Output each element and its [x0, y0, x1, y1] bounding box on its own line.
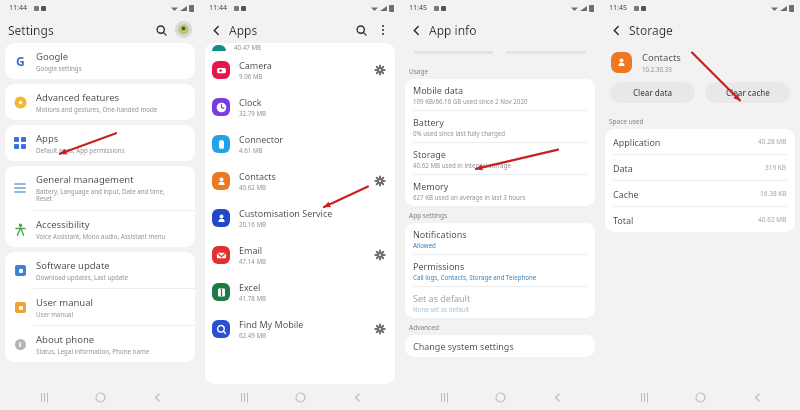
button[interactable]: Apps	[5, 125, 195, 161]
button[interactable]: G	[5, 43, 195, 79]
button[interactable]: Settings	[372, 321, 388, 337]
button[interactable]: Recents	[631, 384, 657, 410]
button[interactable]: Set as default	[405, 287, 595, 318]
staticText: Apps	[36, 132, 59, 145]
button[interactable]: General management	[5, 166, 195, 210]
staticText: Clock	[239, 96, 262, 108]
staticText: 41.78 MB	[239, 294, 267, 302]
staticText: App info	[429, 22, 477, 38]
staticText: Excel	[239, 281, 261, 293]
button[interactable]: Total	[605, 207, 795, 232]
button[interactable]: User manual	[5, 289, 195, 325]
button[interactable]: Application	[605, 129, 795, 154]
button[interactable]: Memory	[405, 175, 595, 206]
button[interactable]: Camera	[205, 51, 395, 88]
button[interactable]: Notifications	[405, 223, 595, 254]
staticText: App settings	[409, 211, 448, 220]
staticText: Clear cache	[726, 87, 770, 98]
button[interactable]: Home	[287, 384, 313, 410]
staticText: Google settings	[36, 64, 82, 72]
staticText: Total	[613, 214, 634, 226]
staticText: Storage	[629, 22, 673, 38]
button[interactable]: Home	[87, 384, 113, 410]
staticText: General management	[36, 173, 134, 186]
button[interactable]: Permissions	[405, 255, 595, 286]
button[interactable]: Software update	[5, 252, 195, 288]
staticText: Application	[613, 136, 661, 148]
staticText: Customisation Service	[239, 207, 333, 219]
staticText: Cache	[613, 188, 639, 200]
staticText: Clear data	[633, 87, 673, 98]
button[interactable]: Customisation Service	[205, 199, 395, 236]
button[interactable]: Back	[144, 384, 170, 410]
staticText: 47.14 MB	[239, 257, 267, 265]
button[interactable]: Recents	[431, 384, 457, 410]
button[interactable]: Data	[605, 155, 795, 180]
button[interactable]: Find My Mobile	[205, 310, 395, 347]
staticText: Google	[36, 50, 69, 63]
button[interactable]: Storage	[405, 143, 595, 174]
button[interactable]: Back	[744, 384, 770, 410]
button[interactable]: Settings	[372, 62, 388, 78]
button[interactable]: Email	[205, 236, 395, 273]
button[interactable]: Home	[487, 384, 513, 410]
button[interactable]: Connector	[205, 125, 395, 162]
button[interactable]: Cache	[605, 181, 795, 206]
staticText: Data	[613, 162, 633, 174]
button[interactable]: Home	[687, 384, 713, 410]
staticText: Allowed	[413, 241, 436, 249]
button[interactable]: More options	[374, 21, 392, 39]
button[interactable]: Search	[152, 21, 170, 39]
staticText: User manual	[36, 296, 93, 309]
staticText: 11:44	[209, 3, 227, 13]
button[interactable]: Back	[408, 22, 424, 38]
staticText: Storage	[413, 148, 446, 160]
staticText: User manual	[36, 310, 74, 318]
button[interactable]: Back	[344, 384, 370, 410]
staticText: 319 KB	[765, 163, 787, 172]
staticText: 62.49 MB	[239, 331, 267, 339]
staticText: 0% used since last fully charged	[413, 129, 506, 137]
staticText: Apps	[229, 22, 258, 38]
staticText: Mobile data	[413, 84, 464, 96]
button[interactable]: Clear data	[610, 82, 695, 103]
staticText: 11:44	[9, 3, 27, 13]
staticText: Permissions	[413, 260, 465, 272]
button[interactable]: Excel	[205, 273, 395, 310]
staticText: Connector	[239, 133, 284, 145]
button[interactable]: i	[5, 326, 195, 362]
button[interactable]: Back	[208, 22, 224, 38]
button[interactable]: Accessibility	[5, 211, 195, 247]
button[interactable]: Settings	[372, 173, 388, 189]
staticText: 109 KB/66.16 GB used since 2 Nov 2020	[413, 97, 528, 105]
staticText: Call logs, Contacts, Storage and Telepho…	[413, 273, 537, 281]
button[interactable]: Clear cache	[705, 82, 790, 103]
button[interactable]: Battery	[405, 111, 595, 142]
button[interactable]: Recents	[31, 384, 57, 410]
staticText: 9.06 MB	[239, 72, 263, 80]
staticText: Set as default	[413, 292, 471, 304]
button[interactable]: Back	[608, 22, 624, 38]
staticText: 40.62 MB	[758, 215, 787, 224]
staticText: 32.79 MB	[239, 109, 267, 117]
button[interactable]: Search	[352, 21, 370, 39]
button[interactable]: Change system settings	[405, 335, 595, 357]
button[interactable]: Contacts	[205, 162, 395, 199]
staticText: i	[19, 340, 22, 350]
button[interactable]: Clock	[205, 88, 395, 125]
staticText: About phone	[36, 333, 95, 346]
button[interactable]: Settings	[372, 247, 388, 263]
staticText: Contacts	[239, 170, 276, 182]
button[interactable]: Back	[544, 384, 570, 410]
button[interactable]: Account	[175, 21, 192, 38]
button[interactable]: Mobile data	[405, 79, 595, 110]
staticText: Battery	[413, 116, 444, 128]
staticText: Software update	[36, 259, 110, 272]
button[interactable]: Recents	[231, 384, 257, 410]
staticText: Advanced	[409, 323, 439, 332]
staticText: Advanced features	[36, 91, 120, 104]
staticText: 40.47 MB	[234, 43, 262, 51]
staticText: 11:45	[609, 3, 627, 13]
staticText: Settings	[8, 22, 54, 38]
button[interactable]: Advanced features	[5, 84, 195, 120]
